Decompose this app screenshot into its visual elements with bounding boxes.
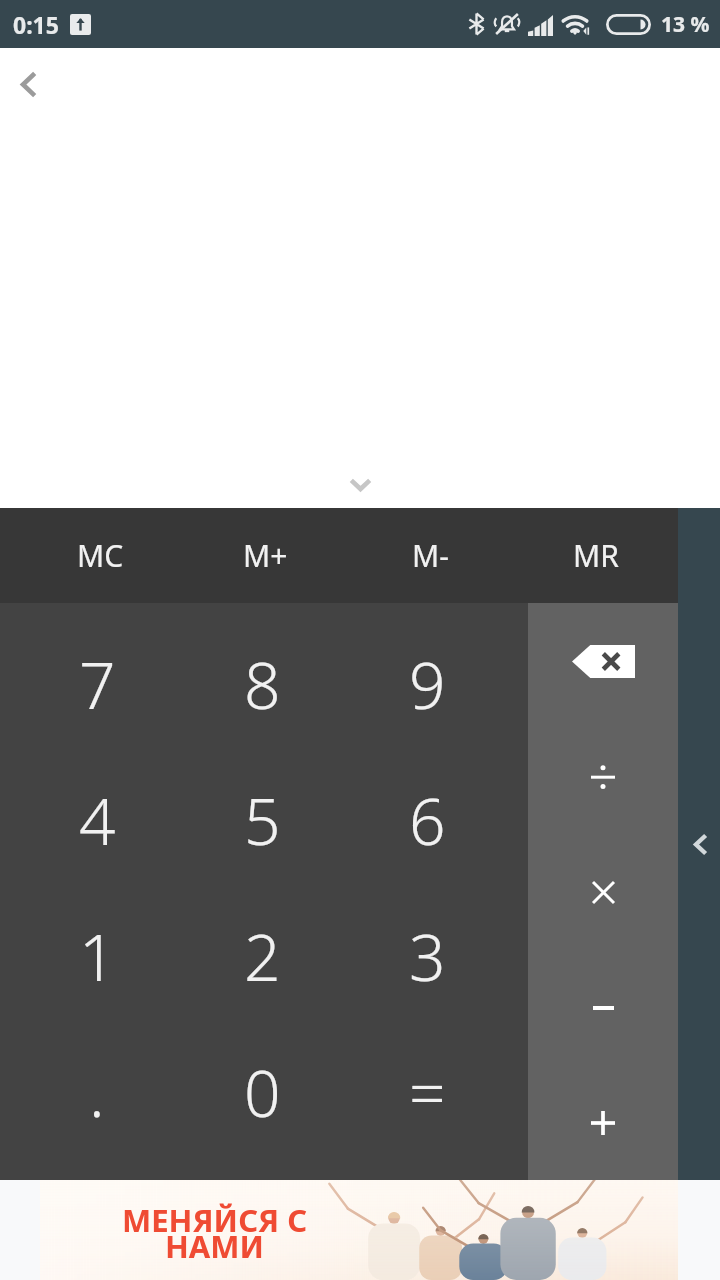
staticText: 6 [409,777,446,864]
staticText: 1 [79,913,116,1000]
button[interactable]: 6 [345,752,510,888]
staticText: 3 [409,913,446,1000]
staticText: . [89,1049,105,1136]
staticText: 8 [244,641,281,728]
button[interactable]: 3 [345,888,510,1024]
button[interactable]: Collapse keypad [338,463,382,507]
staticText: MC [77,535,124,576]
button[interactable]: 1 [14,888,180,1024]
button[interactable]: 7 [14,616,180,752]
staticText: НАМИ [165,1225,265,1267]
button[interactable]: Plus [528,1065,678,1180]
staticText: M- [412,535,449,576]
staticText: 7 [79,641,116,728]
button[interactable]: 4 [14,752,180,888]
staticText: 0 [244,1049,281,1136]
staticText: МЕНЯЙСЯ С [122,1199,308,1241]
staticText: 0:15 [13,9,59,40]
staticText: 13 % [661,10,710,39]
staticText: 5 [244,777,281,864]
button[interactable]: Multiply [528,835,678,950]
button[interactable]: Divide [528,719,678,835]
button[interactable]: = [345,1024,510,1160]
button[interactable]: Backspace [528,603,678,719]
staticText: 4 [79,777,116,864]
button[interactable]: 9 [345,616,510,752]
button[interactable]: 0 [180,1024,345,1160]
button[interactable]: M+ [183,508,348,603]
button[interactable]: Minus [528,950,678,1065]
staticText: MR [573,535,619,576]
button[interactable]: МЕНЯЙСЯ С [40,1180,678,1280]
button[interactable]: . [14,1024,180,1160]
button[interactable]: MC [17,508,183,603]
button[interactable]: Open panel [679,823,720,865]
staticText: 2 [244,913,281,1000]
staticText: 9 [409,641,446,728]
staticText: M+ [243,535,288,576]
button[interactable]: M- [348,508,513,603]
staticText: = [409,1049,446,1136]
button[interactable]: 8 [180,616,345,752]
button[interactable]: 2 [180,888,345,1024]
button[interactable]: 5 [180,752,345,888]
button[interactable]: Back [6,62,50,106]
button[interactable]: MR [513,508,678,603]
